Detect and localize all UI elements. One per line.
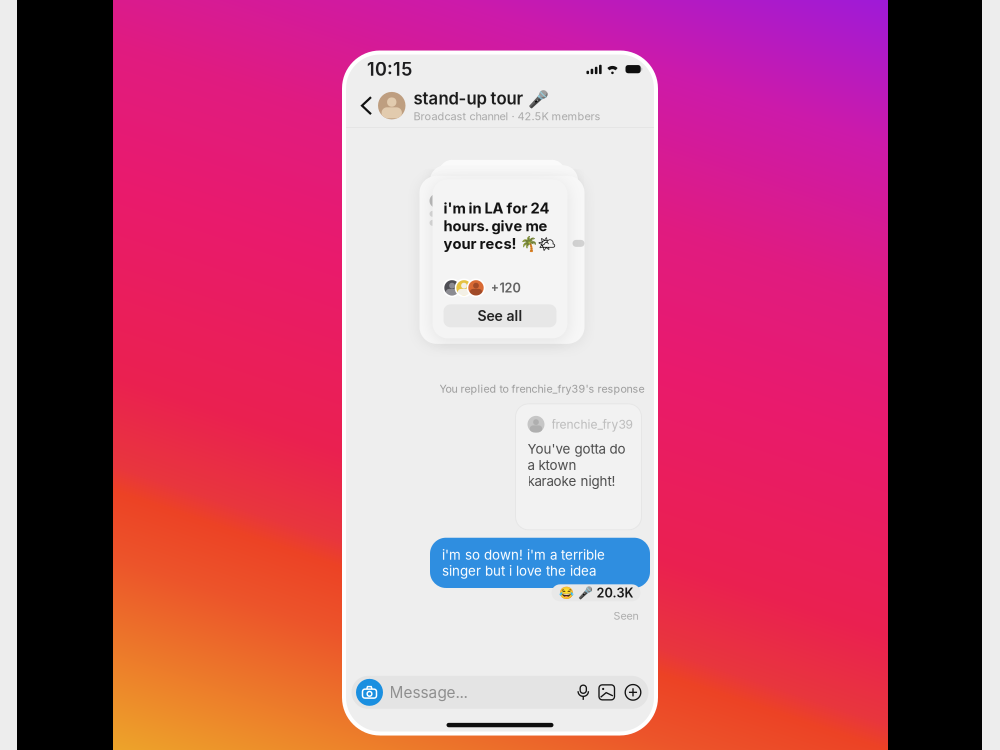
staticText: Broadcast channel · 42.5K members (413, 110, 600, 123)
staticText: +120 (490, 280, 520, 295)
button[interactable]: stand-up tour 🎤 (378, 88, 644, 123)
staticText: 😂 (558, 586, 573, 600)
staticText: 10:15 (367, 58, 412, 80)
staticText: 20.3K (596, 585, 633, 600)
staticText: See all (477, 307, 522, 324)
staticText: i'm so down! i'm a terrible singer but i… (442, 547, 605, 579)
staticText: You replied to frenchie_fry39's response (439, 382, 644, 395)
staticText: i'm in LA for 24 hours. give me your rec… (443, 199, 556, 253)
staticText: stand-up tour 🎤 (413, 88, 548, 109)
button[interactable]: See all (443, 304, 556, 327)
staticText: 🎤 (577, 586, 592, 600)
button[interactable]: More (619, 678, 641, 707)
staticText: You've gotta do a ktown karaoke night! (527, 441, 625, 489)
button[interactable]: Voice message (572, 678, 594, 706)
button[interactable]: Back (355, 91, 378, 120)
button[interactable]: Photos (594, 679, 619, 706)
button[interactable]: Camera (352, 675, 386, 709)
staticText: Seen (613, 609, 638, 622)
staticText: Message... (389, 683, 467, 702)
staticText: frenchie_fry39 (551, 417, 632, 432)
